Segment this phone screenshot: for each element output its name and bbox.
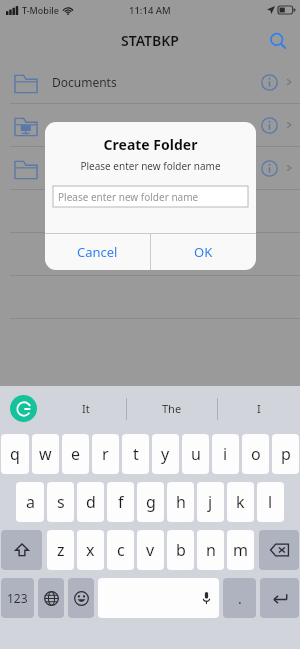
button[interactable]: Info: [256, 69, 282, 95]
button[interactable]: g: [137, 482, 164, 522]
button[interactable]: a: [16, 482, 44, 522]
staticText: Please enter new folder name: [45, 159, 256, 173]
staticText: 123: [7, 590, 28, 606]
staticText: y: [161, 443, 170, 465]
button[interactable]: n: [197, 530, 224, 570]
staticText: Cancel: [77, 243, 118, 261]
staticText: z: [57, 539, 65, 561]
staticText: d: [86, 491, 96, 513]
button[interactable]: Backspace: [259, 530, 299, 570]
staticText: w: [39, 443, 52, 465]
button[interactable]: q: [1, 434, 29, 474]
button[interactable]: j: [197, 482, 224, 522]
button[interactable]: Return: [260, 578, 299, 618]
button[interactable]: 123: [1, 578, 34, 618]
button[interactable]: i: [212, 434, 239, 474]
staticText: .: [238, 589, 242, 608]
staticText: l: [268, 491, 273, 513]
staticText: u: [191, 443, 201, 465]
staticText: q: [10, 443, 20, 465]
staticText: a: [26, 491, 35, 513]
button[interactable]: Please enter new folder name: [53, 186, 248, 207]
staticText: The: [162, 401, 182, 416]
button[interactable]: Switch language: [38, 578, 64, 618]
button[interactable]: b: [167, 530, 194, 570]
button[interactable]: Documents: [0, 61, 300, 103]
button[interactable]: u: [182, 434, 209, 474]
staticText: c: [117, 539, 125, 561]
button[interactable]: f: [107, 482, 134, 522]
staticText: h: [176, 491, 186, 513]
button[interactable]: I: [218, 386, 300, 431]
button[interactable]: Emoji: [68, 578, 94, 618]
button[interactable]: c: [107, 530, 134, 570]
staticText: 11:14 AM: [129, 4, 171, 17]
button[interactable]: .: [223, 578, 256, 618]
button[interactable]: y: [152, 434, 179, 474]
button[interactable]: e: [62, 434, 89, 474]
staticText: Documents: [52, 74, 117, 90]
button[interactable]: m: [227, 530, 254, 570]
staticText: e: [71, 443, 81, 465]
staticText: f: [118, 491, 124, 513]
staticText: Create Folder: [45, 135, 256, 154]
button[interactable]: l: [257, 482, 284, 522]
button[interactable]: Grammarly: [10, 395, 37, 422]
button[interactable]: It: [45, 386, 126, 431]
button[interactable]: d: [77, 482, 104, 522]
staticText: o: [251, 443, 261, 465]
staticText: i: [223, 443, 228, 465]
staticText: Please enter new folder name: [58, 190, 199, 204]
staticText: x: [86, 539, 95, 561]
button[interactable]: x: [77, 530, 104, 570]
staticText: j: [208, 491, 213, 513]
button[interactable]: v: [137, 530, 164, 570]
button[interactable]: Info: [256, 112, 282, 138]
staticText: v: [146, 539, 155, 561]
button[interactable]: Info: [0, 104, 300, 146]
staticText: p: [281, 443, 291, 465]
staticText: s: [57, 491, 65, 513]
staticText: T-Mobile: [22, 4, 59, 16]
button[interactable]: Shift: [1, 530, 42, 570]
button[interactable]: o: [242, 434, 269, 474]
staticText: n: [206, 539, 216, 561]
staticText: m: [233, 539, 248, 561]
staticText: r: [102, 443, 109, 465]
button[interactable]: t: [122, 434, 149, 474]
button[interactable]: Info: [0, 147, 300, 189]
button[interactable]: Search: [264, 27, 292, 55]
button[interactable]: Cancel: [45, 234, 150, 270]
button[interactable]: s: [47, 482, 74, 522]
staticText: OK: [194, 243, 213, 261]
button[interactable]: w: [32, 434, 59, 474]
button[interactable]: p: [272, 434, 299, 474]
button[interactable]: Info: [256, 155, 282, 181]
staticText: k: [236, 491, 245, 513]
button[interactable]: Space: [98, 578, 219, 618]
staticText: g: [146, 491, 156, 513]
button[interactable]: k: [227, 482, 254, 522]
button[interactable]: z: [47, 530, 74, 570]
button[interactable]: OK: [151, 234, 256, 270]
staticText: It: [82, 401, 90, 416]
button[interactable]: h: [167, 482, 194, 522]
staticText: I: [257, 401, 261, 416]
staticText: t: [133, 443, 139, 465]
staticText: STATBKP: [121, 31, 179, 50]
staticText: b: [176, 539, 186, 561]
button[interactable]: r: [92, 434, 119, 474]
button[interactable]: The: [127, 386, 217, 431]
